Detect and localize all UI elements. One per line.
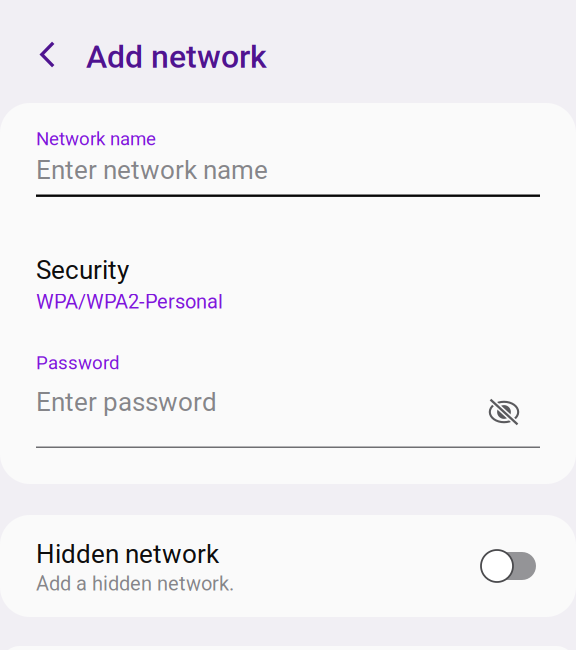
staticText: Enter network name — [36, 155, 268, 185]
staticText: Network name — [36, 128, 156, 150]
staticText: Add network — [86, 38, 267, 75]
staticText: WPA/WPA2-Personal — [36, 290, 223, 313]
button[interactable]: Add network — [0, 0, 576, 103]
button[interactable]: Hidden network — [0, 515, 576, 617]
staticText: Add a hidden network. — [36, 572, 234, 595]
staticText: Password — [36, 352, 120, 374]
staticText: Security — [36, 255, 129, 285]
staticText: Hidden network — [36, 539, 219, 569]
staticText: Enter password — [36, 387, 217, 417]
button[interactable]: Show password — [482, 390, 526, 434]
